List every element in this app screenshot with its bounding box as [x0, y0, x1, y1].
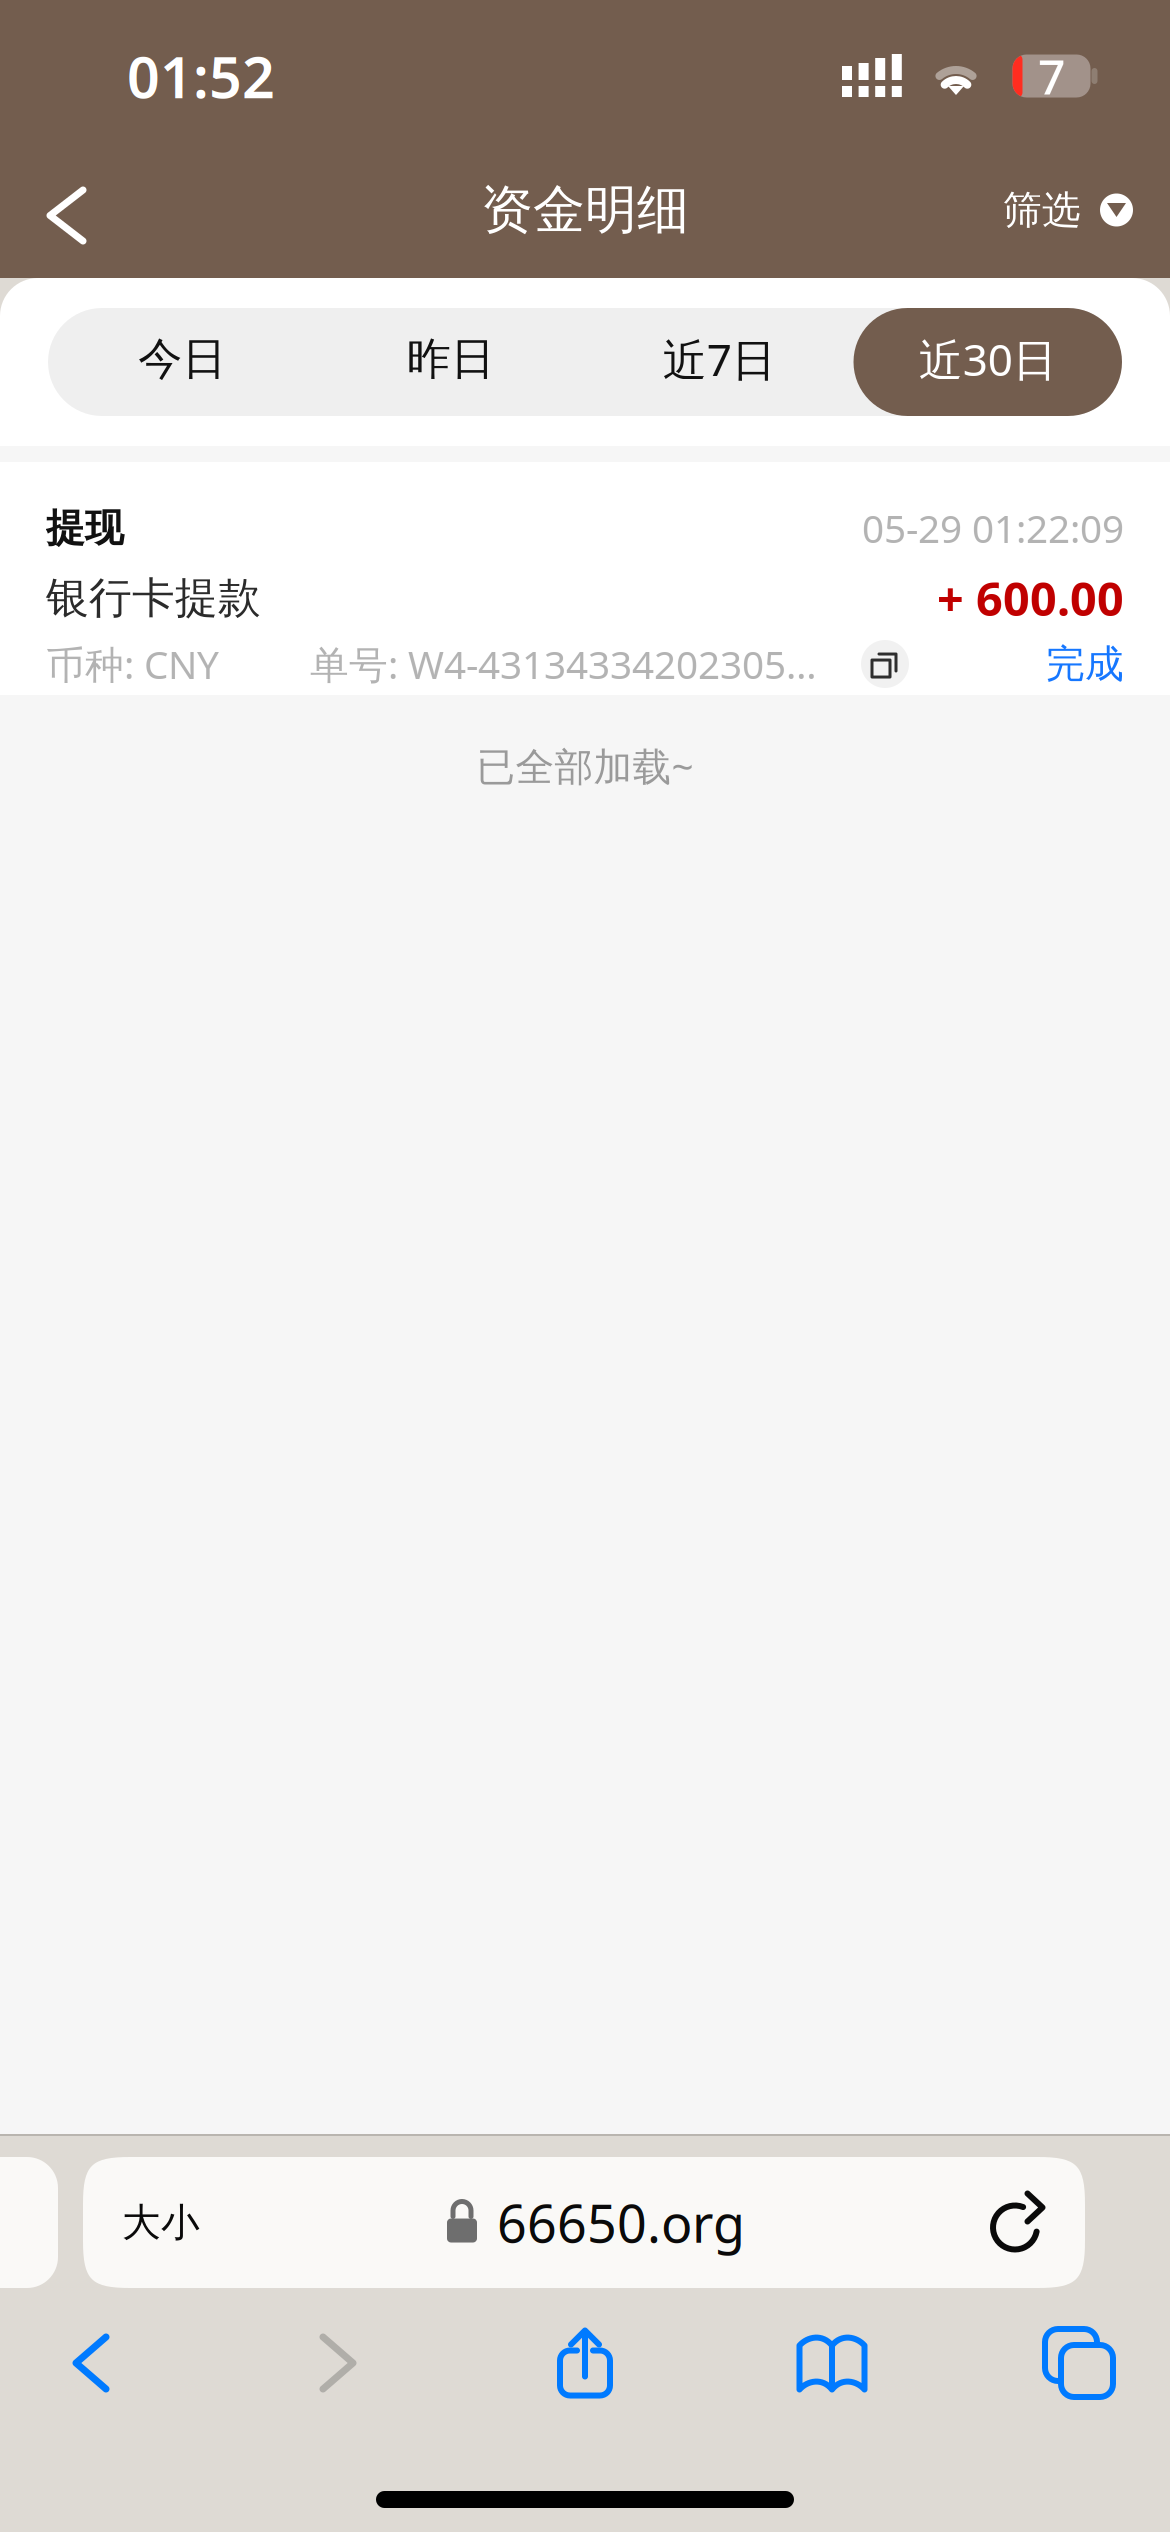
- staticText: 今日: [138, 332, 226, 386]
- staticText: 05-29 01:22:09: [862, 502, 1124, 554]
- staticText: 筛选: [1003, 186, 1081, 234]
- staticText: 提现: [46, 504, 124, 552]
- staticText: 昨日: [407, 332, 495, 386]
- staticText: 已全部加载~: [476, 740, 693, 791]
- button[interactable]: 今日: [48, 308, 316, 416]
- staticText: + 600.00: [937, 567, 1124, 629]
- staticText: 01:52: [127, 38, 275, 114]
- staticText: 币种: CNY: [46, 638, 219, 690]
- staticText: 大小: [122, 2199, 200, 2246]
- staticText: 完成: [1046, 640, 1124, 688]
- staticText: 单号: W4-43134334202305…: [310, 638, 817, 690]
- button[interactable]: Back: [16, 2318, 166, 2408]
- staticText: 银行卡提款: [46, 572, 261, 624]
- button[interactable]: 近30日: [853, 308, 1122, 416]
- staticText: 近7日: [663, 330, 776, 388]
- button[interactable]: 近7日: [585, 308, 853, 416]
- staticText: 66650.org: [497, 2188, 745, 2257]
- button[interactable]: 昨日: [316, 308, 585, 416]
- button[interactable]: Share: [510, 2318, 660, 2408]
- button[interactable]: Back: [0, 158, 117, 262]
- button[interactable]: 筛选: [973, 158, 1170, 262]
- staticText: 资金明细: [481, 178, 689, 242]
- button[interactable]: Forward: [263, 2318, 413, 2408]
- button[interactable]: 大小: [83, 2157, 1085, 2288]
- button[interactable]: Tabs: [1004, 2318, 1154, 2408]
- button[interactable]: Bookmarks: [757, 2318, 907, 2408]
- button[interactable]: Copy order number: [861, 640, 909, 688]
- staticText: 7: [1038, 44, 1065, 108]
- staticText: 近30日: [919, 330, 1057, 388]
